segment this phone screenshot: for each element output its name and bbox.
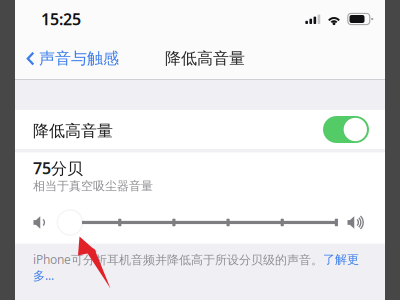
staticText: 声音与触感 [39,49,119,68]
button[interactable]: 降低高音量 [15,110,385,149]
staticText: 多... [33,267,54,283]
button[interactable]: 声音与触感 [15,38,127,79]
staticText: 降低高音量 [165,49,245,68]
button[interactable]: 了解更 [323,252,359,267]
staticText: 降低高音量 [33,121,113,141]
staticText: 15:25 [41,8,81,30]
staticText: 75分贝 [33,157,83,179]
staticText: 了解更 [323,252,359,267]
button[interactable]: 多... [33,267,54,283]
staticText: iPhone可分析耳机音频并降低高于所设分贝级的声音。 [33,251,323,267]
staticText: 相当于真空吸尘器音量 [33,179,153,193]
